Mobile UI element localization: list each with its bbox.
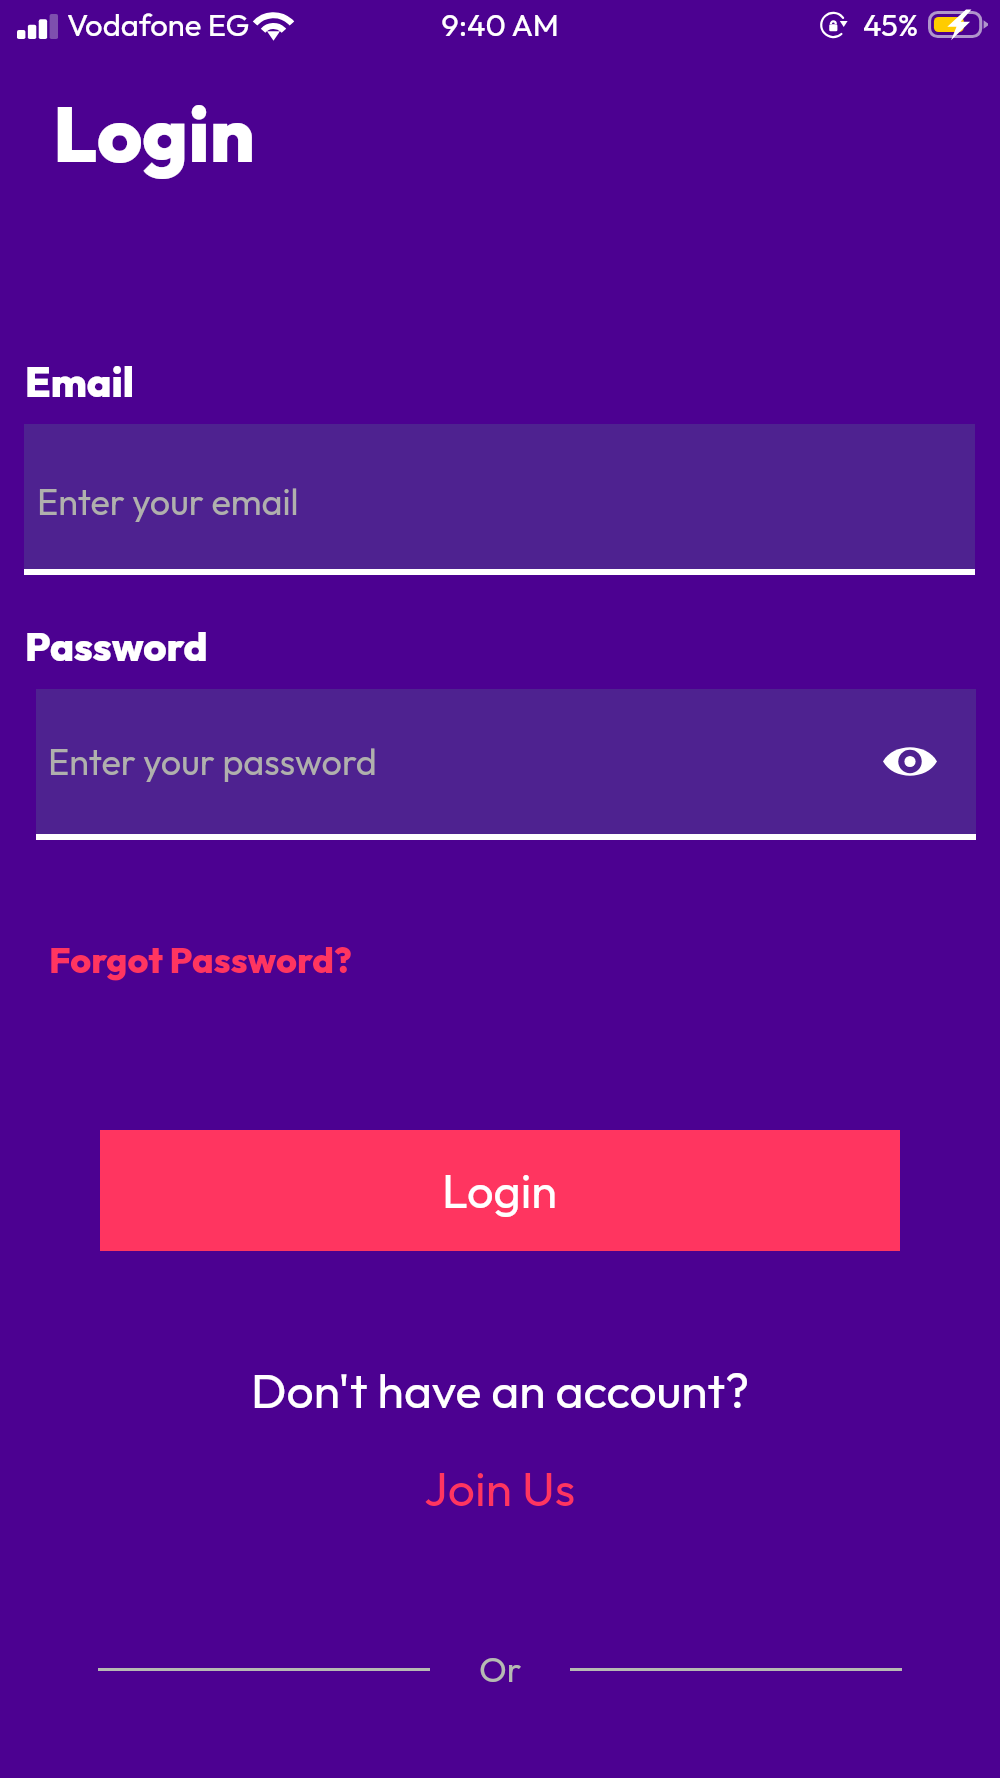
staticText: Don't have an account?	[251, 1360, 750, 1420]
staticText: Login	[53, 84, 256, 182]
staticText: Password	[25, 621, 208, 671]
button[interactable]: Show password	[874, 725, 946, 797]
staticText: Or	[479, 1647, 522, 1691]
staticText: Enter your email	[37, 479, 299, 524]
staticText: Enter your password	[48, 739, 377, 784]
button[interactable]: Login	[100, 1130, 900, 1251]
staticText: Email	[25, 356, 135, 408]
staticText: 45%	[863, 5, 919, 44]
staticText: Vodafone EG	[67, 5, 250, 44]
button[interactable]: Enter your email	[24, 424, 975, 575]
button[interactable]: Join Us	[424, 1458, 576, 1518]
staticText: 9:40 AM	[0, 5, 1000, 44]
staticText: Login	[442, 1161, 558, 1220]
button[interactable]: Enter your password	[36, 689, 976, 840]
button[interactable]: Forgot Password?	[49, 937, 352, 982]
